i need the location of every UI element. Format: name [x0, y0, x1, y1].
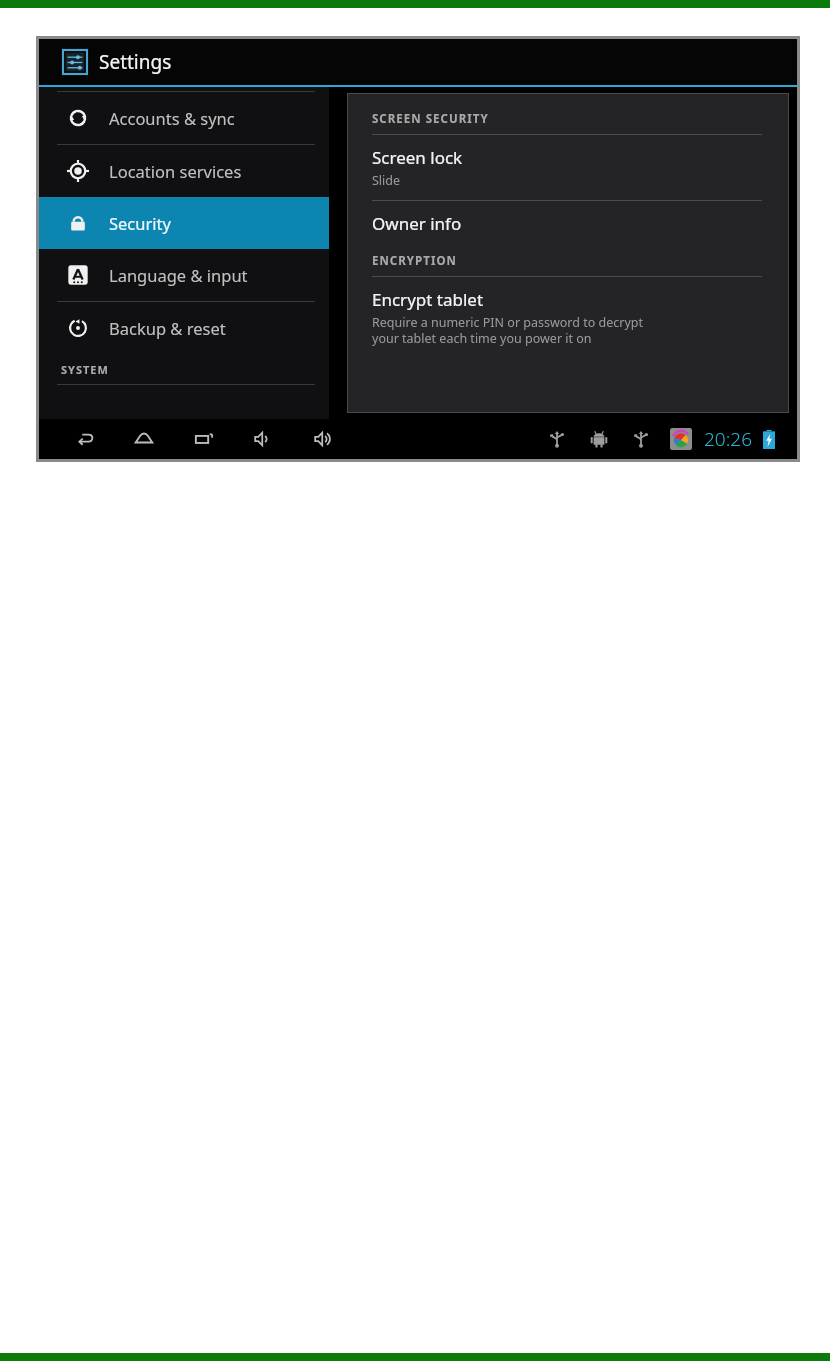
button[interactable]: Volume down: [247, 422, 281, 456]
button[interactable]: Location services: [39, 145, 329, 197]
staticText: Security: [109, 212, 171, 234]
staticText: Encrypt tablet: [372, 288, 484, 311]
other: Settings: [63, 50, 87, 74]
staticText: Slide: [372, 172, 401, 189]
staticText: 20:26: [704, 426, 753, 452]
button[interactable]: Backup & reset: [39, 302, 329, 354]
button[interactable]: Recent apps: [187, 422, 221, 456]
button[interactable]: Screen lock: [372, 135, 768, 200]
staticText: Location services: [109, 160, 242, 182]
button[interactable]: Accounts & sync: [39, 92, 329, 144]
staticText: Language & input: [109, 264, 248, 286]
button[interactable]: Volume up: [307, 422, 341, 456]
staticText: Owner info: [372, 212, 462, 235]
staticText: Require a numeric PIN or password to dec…: [372, 314, 644, 346]
button[interactable]: Settings: [39, 39, 797, 85]
staticText: Accounts & sync: [109, 107, 235, 129]
staticText: ENCRYPTION: [372, 253, 457, 269]
staticText: Screen lock: [372, 146, 463, 169]
button[interactable]: Back: [67, 422, 101, 456]
staticText: Settings: [99, 49, 172, 75]
button[interactable]: Home: [127, 422, 161, 456]
staticText: Backup & reset: [109, 317, 226, 339]
button[interactable]: Encrypt tablet: [372, 277, 768, 357]
staticText: SYSTEM: [61, 362, 109, 377]
button[interactable]: Security: [39, 197, 329, 249]
button[interactable]: Owner info: [372, 201, 768, 246]
staticText: SCREEN SECURITY: [372, 111, 489, 127]
button[interactable]: Language & input: [39, 249, 329, 301]
